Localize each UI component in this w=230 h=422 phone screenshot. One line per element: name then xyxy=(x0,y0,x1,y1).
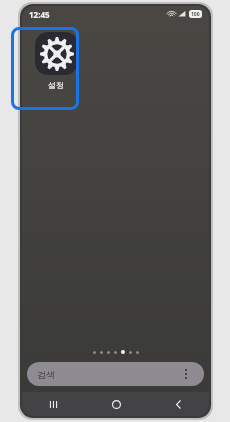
staticText: 설정 xyxy=(48,80,64,90)
staticText: 100 xyxy=(191,11,200,18)
button[interactable]: 최근 앱 xyxy=(22,392,85,416)
staticText: 검색 xyxy=(37,369,55,380)
button[interactable]: 설정 xyxy=(25,26,87,96)
button[interactable]: 더보기 xyxy=(178,366,194,382)
button[interactable]: 홈 xyxy=(85,392,147,416)
staticText: 12:45 xyxy=(29,9,50,20)
button[interactable]: 뒤로 xyxy=(147,392,209,416)
other: 설정 xyxy=(35,32,78,75)
button[interactable]: 검색 xyxy=(27,362,204,386)
